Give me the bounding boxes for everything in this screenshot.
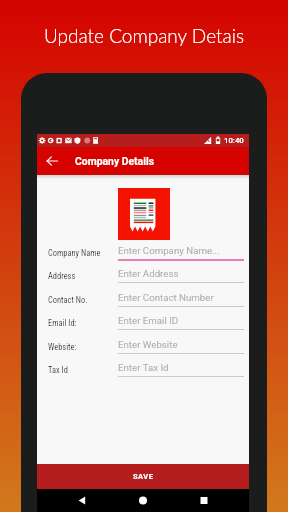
staticText: Company Name — [48, 248, 101, 258]
staticText: Enter Contact Number — [118, 292, 214, 303]
staticText: Contact No. — [48, 295, 88, 305]
button[interactable]: SAVE — [37, 464, 249, 489]
staticText: Enter Tax Id — [118, 362, 169, 373]
button[interactable]: Contact No. — [37, 288, 249, 311]
staticText: Enter Company Name... — [118, 245, 220, 256]
button[interactable]: Back — [38, 147, 66, 175]
staticText: Enter Website — [118, 339, 178, 350]
button[interactable]: Website: — [37, 335, 249, 358]
staticText: Address — [48, 271, 76, 281]
staticText: 10:40 — [224, 136, 244, 145]
staticText: Email Id: — [48, 318, 77, 328]
staticText: Tax Id — [48, 365, 68, 375]
staticText: Company Details — [75, 155, 154, 167]
button[interactable]: Address — [37, 264, 249, 287]
button[interactable]: Email Id: — [37, 311, 249, 334]
staticText: SAVE — [133, 472, 154, 481]
staticText: Website: — [48, 342, 77, 352]
button[interactable]: Company Name — [37, 241, 249, 264]
button[interactable]: Tax Id — [37, 358, 249, 381]
staticText: Enter Address — [118, 268, 179, 279]
staticText: Update Company Detais — [0, 24, 288, 47]
staticText: Enter Email ID — [118, 315, 179, 326]
